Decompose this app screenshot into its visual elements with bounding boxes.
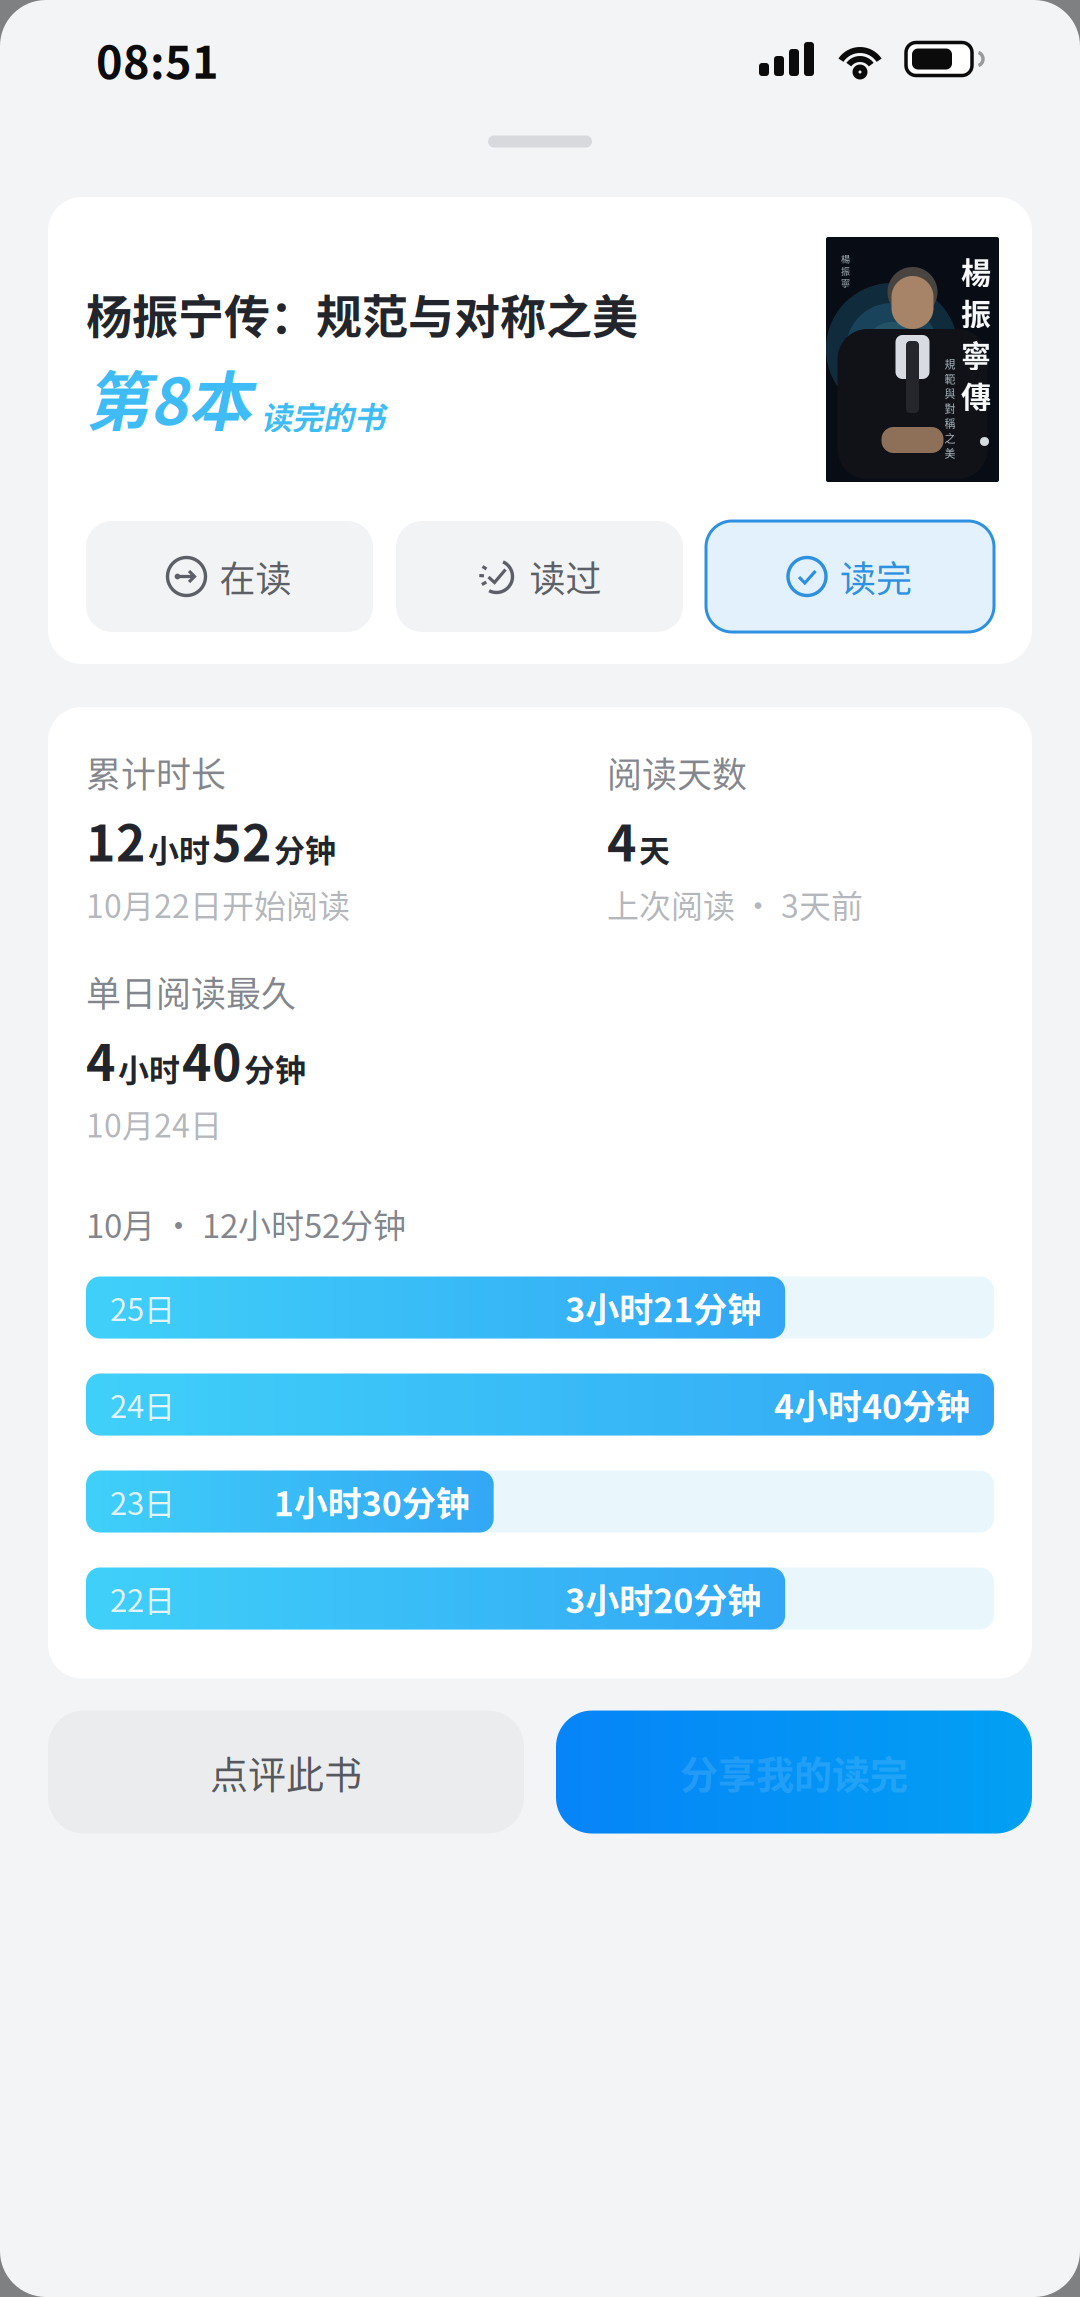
staticText: 点评此书: [210, 1744, 362, 1799]
staticText: 4: [86, 1023, 116, 1095]
staticText: 累计时长: [86, 747, 226, 798]
staticText: 10月22日开始阅读: [86, 881, 350, 927]
staticText: 對: [944, 400, 955, 416]
staticText: 3小时21分钟: [565, 1283, 761, 1332]
staticText: 振: [841, 264, 850, 277]
staticText: 範: [944, 371, 955, 387]
button[interactable]: 在读: [86, 521, 373, 632]
staticText: 分钟: [244, 1045, 306, 1090]
staticText: 10月 · 12小时52分钟: [86, 1200, 406, 1247]
staticText: 3小时20分钟: [565, 1574, 761, 1623]
staticText: 23日: [110, 1479, 175, 1524]
staticText: 美: [944, 445, 955, 461]
staticText: 分钟: [274, 826, 336, 871]
staticText: 小时: [148, 826, 210, 871]
staticText: 08:51: [96, 26, 219, 92]
staticText: 振: [961, 290, 991, 334]
staticText: 第8本: [86, 351, 252, 443]
staticText: 24日: [110, 1382, 175, 1427]
staticText: 40: [182, 1023, 242, 1095]
staticText: 在读: [219, 550, 291, 602]
staticText: 上次阅读 · 3天前: [607, 881, 863, 927]
staticText: 與: [944, 386, 955, 401]
staticText: 读过: [529, 550, 601, 602]
staticText: 52: [212, 804, 272, 876]
staticText: 寧: [841, 276, 850, 289]
staticText: 25日: [110, 1285, 175, 1330]
button[interactable]: 读过: [396, 521, 683, 632]
staticText: 1小时30分钟: [274, 1477, 470, 1526]
button[interactable]: 读完: [706, 521, 994, 632]
staticText: 12: [86, 804, 146, 876]
staticText: 阅读天数: [607, 747, 747, 798]
button[interactable]: 分享我的读完: [556, 1710, 1032, 1833]
staticText: 单日阅读最久: [86, 966, 296, 1017]
button[interactable]: 点评此书: [48, 1710, 524, 1833]
staticText: 22日: [110, 1576, 175, 1621]
staticText: 稱: [944, 415, 955, 431]
staticText: 10月24日: [86, 1100, 222, 1147]
staticText: 寧: [961, 332, 991, 375]
staticText: 之: [944, 430, 955, 446]
staticText: 读完的书: [261, 393, 385, 438]
staticText: 小时: [118, 1045, 180, 1090]
staticText: 杨振宁传：规范与对称之美: [86, 280, 638, 347]
staticText: 規: [944, 356, 955, 372]
staticText: 天: [639, 826, 670, 871]
staticText: 4: [607, 804, 637, 876]
staticText: 读完: [840, 550, 912, 602]
staticText: 分享我的读完: [680, 1744, 908, 1799]
staticText: 4小时40分钟: [774, 1380, 970, 1429]
staticText: 楊: [841, 252, 850, 265]
staticText: 楊: [961, 249, 991, 292]
staticText: 傳: [961, 373, 991, 417]
